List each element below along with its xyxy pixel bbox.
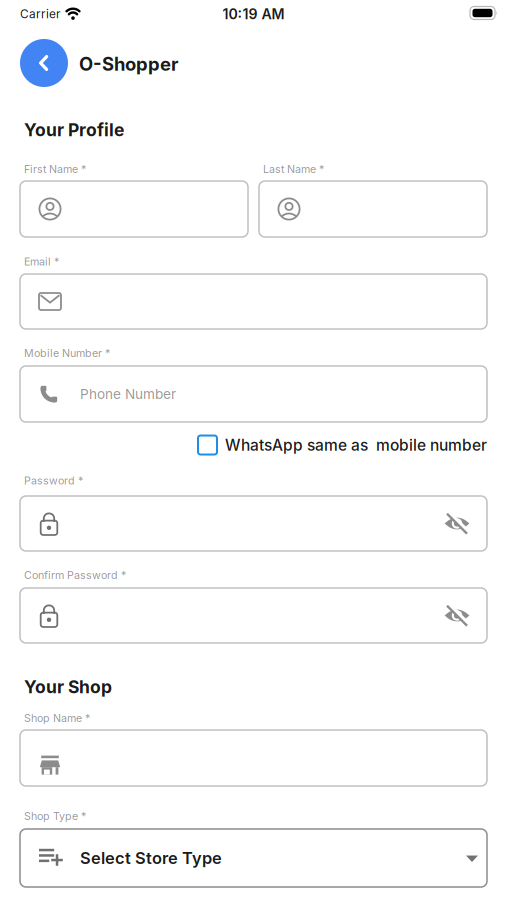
- staticText: Select Store Type: [80, 848, 222, 868]
- textField[interactable]: Last Name: [259, 201, 487, 217]
- textField[interactable]: Shop Name: [20, 750, 487, 766]
- staticText: Carrier: [20, 7, 60, 21]
- textField[interactable]: Email: [20, 293, 487, 309]
- staticText: Confirm Password *: [24, 568, 126, 581]
- staticText: Email *: [24, 255, 59, 268]
- button[interactable]: Select Store Type: [0, 829, 487, 887]
- button[interactable]: Back: [20, 39, 68, 87]
- staticText: First Name *: [24, 162, 86, 175]
- staticText: WhatsApp same as mobile number: [225, 436, 487, 454]
- staticText: Mobile Number *: [24, 346, 110, 359]
- button[interactable]: Show password: [444, 511, 470, 535]
- textField[interactable]: First Name: [20, 201, 248, 217]
- staticText: O-Shopper: [79, 53, 178, 75]
- staticText: Your Shop: [24, 676, 112, 697]
- staticText: Shop Type *: [24, 809, 86, 822]
- staticText: Phone Number: [80, 386, 176, 402]
- staticText: Shop Name *: [24, 711, 90, 724]
- staticText: Last Name *: [263, 162, 324, 175]
- staticText: Your Profile: [24, 119, 124, 140]
- textField[interactable]: Mobile Number: [20, 386, 487, 402]
- textField[interactable]: Confirm Password: [20, 607, 487, 623]
- textField[interactable]: Password: [20, 515, 487, 531]
- button[interactable]: WhatsApp same as mobile number: [20, 434, 487, 456]
- staticText: 10:19 AM: [222, 5, 284, 22]
- staticText: Password *: [24, 474, 83, 487]
- button[interactable]: Show confirm password: [444, 603, 470, 627]
